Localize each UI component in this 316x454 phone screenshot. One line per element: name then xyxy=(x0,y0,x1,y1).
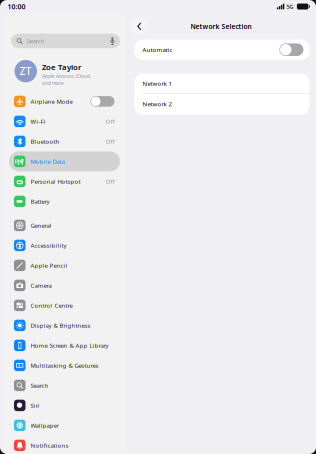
button[interactable]: Personal Hotspot xyxy=(9,171,120,191)
button[interactable]: Control Centre xyxy=(9,295,120,315)
staticText: Camera xyxy=(30,281,51,289)
button[interactable]: Airplane Mode xyxy=(9,91,120,111)
button[interactable]: Multitasking & Gestures xyxy=(9,355,120,375)
staticText: Mobile Data xyxy=(30,157,64,165)
staticText: Display & Brightness xyxy=(30,321,90,329)
staticText: Network Selection xyxy=(190,22,251,31)
staticText: Multitasking & Gestures xyxy=(30,361,98,369)
staticText: Apple Pencil xyxy=(30,261,67,269)
button[interactable]: Siri xyxy=(9,395,120,415)
staticText: 5G xyxy=(286,3,293,10)
staticText: Zoe Taylor xyxy=(42,62,81,72)
button[interactable]: Search xyxy=(9,375,120,395)
staticText: Wi-Fi xyxy=(30,117,45,125)
button[interactable]: Network 1 xyxy=(134,74,309,93)
staticText: Personal Hotspot xyxy=(30,177,80,185)
staticText: Network 2 xyxy=(142,100,171,108)
button[interactable]: Wi-Fi xyxy=(9,111,120,131)
staticText: Bluetooth xyxy=(30,137,59,145)
button[interactable]: General xyxy=(9,215,120,235)
staticText: Notifications xyxy=(30,441,68,449)
button[interactable]: Camera xyxy=(9,275,120,295)
staticText: Airplane Mode xyxy=(30,97,72,105)
staticText: Search xyxy=(26,37,44,45)
staticText: Network 1 xyxy=(142,79,171,87)
button[interactable]: ZT xyxy=(9,60,120,82)
staticText: Search xyxy=(30,381,48,389)
staticText: General xyxy=(30,221,51,229)
staticText: and more xyxy=(42,80,64,86)
staticText: Off xyxy=(105,177,114,185)
button[interactable]: Notifications xyxy=(9,435,120,454)
button[interactable]: Mobile Data xyxy=(9,151,120,171)
staticText: Siri xyxy=(30,401,39,409)
button[interactable]: Bluetooth xyxy=(9,131,120,151)
button[interactable]: Battery xyxy=(9,191,120,211)
button[interactable]: Apple Pencil xyxy=(9,255,120,275)
button[interactable]: Network 2 xyxy=(134,93,309,114)
staticText: Battery xyxy=(30,197,49,205)
staticText: ZT xyxy=(20,65,32,78)
staticText: Automatic xyxy=(142,46,172,54)
staticText: Apple Account, iCloud xyxy=(42,73,90,79)
button[interactable]: Back xyxy=(130,18,148,35)
staticText: Home Screen & App Library xyxy=(30,341,108,349)
staticText: 10:00 xyxy=(8,2,26,11)
button[interactable]: Display & Brightness xyxy=(9,315,120,335)
staticText: Accessibility xyxy=(30,241,66,249)
button[interactable]: Wallpaper xyxy=(9,415,120,435)
staticText: Off xyxy=(105,137,114,145)
staticText: Wallpaper xyxy=(30,421,58,429)
button[interactable]: Accessibility xyxy=(9,235,120,255)
staticText: Control Centre xyxy=(30,301,72,309)
button[interactable]: Home Screen & App Library xyxy=(9,335,120,355)
staticText: Off xyxy=(105,117,114,125)
